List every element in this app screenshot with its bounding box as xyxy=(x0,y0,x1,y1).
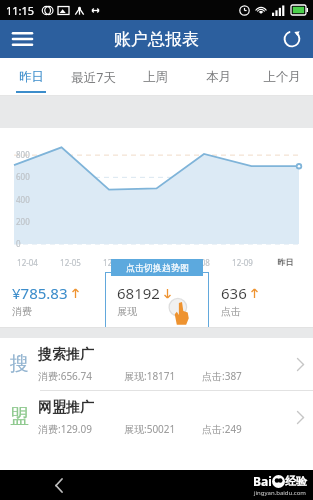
staticText: 68192 xyxy=(117,283,160,303)
staticText: 636 xyxy=(221,283,247,303)
staticText: 上个月 xyxy=(263,69,301,85)
button[interactable]: 上个月 xyxy=(250,58,313,96)
button[interactable]: 昨日 xyxy=(0,58,62,96)
staticText: 经验 xyxy=(285,474,307,488)
staticText: 最近7天 xyxy=(71,69,116,86)
staticText: 11:15 xyxy=(6,3,35,18)
staticText: 消费 xyxy=(12,305,32,318)
button[interactable]: 盟 xyxy=(0,391,313,443)
button[interactable]: 搜 xyxy=(0,338,313,390)
button[interactable]: Refresh xyxy=(271,20,313,58)
staticText: 600 xyxy=(16,171,30,182)
staticText: 账户总报表 xyxy=(114,29,199,50)
staticText: 上周 xyxy=(143,69,168,85)
staticText: 搜 xyxy=(10,352,29,376)
button[interactable]: 636 xyxy=(209,272,313,328)
staticText: 点击切换趋势图 xyxy=(126,262,189,273)
staticText: 12-05 xyxy=(49,257,92,268)
staticText: 12-08 xyxy=(178,257,221,268)
button[interactable]: ¥785.83 xyxy=(0,272,105,328)
staticText: 消费:129.09 xyxy=(38,422,124,436)
button[interactable]: 本月 xyxy=(187,58,250,96)
staticText: 搜索推广 xyxy=(38,346,94,364)
staticText: 800 xyxy=(16,149,30,160)
staticText: 12-07 xyxy=(135,257,178,268)
staticText: Bai xyxy=(253,473,272,489)
staticText: 点击:387 xyxy=(202,369,273,383)
staticText: 网盟推广 xyxy=(38,399,94,417)
button[interactable]: 上周 xyxy=(124,58,187,96)
staticText: 12-06 xyxy=(92,257,135,268)
staticText: 200 xyxy=(16,216,30,227)
staticText: 点击 xyxy=(221,305,241,318)
button[interactable]: 68192 xyxy=(105,272,209,328)
staticText: 0 xyxy=(16,238,21,249)
staticText: 400 xyxy=(16,194,30,205)
staticText: 12-09 xyxy=(221,257,264,268)
staticText: 展现:50021 xyxy=(124,422,202,436)
staticText: 本月 xyxy=(206,69,231,85)
staticText: 昨日 xyxy=(19,69,44,85)
button[interactable]: Back xyxy=(44,470,74,500)
staticText: ¥785.83 xyxy=(12,283,68,303)
staticText: 展现:18171 xyxy=(124,369,202,383)
staticText: jingyan.baidu.com xyxy=(254,489,306,497)
staticText: 12-04 xyxy=(6,257,49,268)
staticText: 昨日 xyxy=(264,257,307,267)
staticText: 消费:656.74 xyxy=(38,369,124,383)
staticText: 盟 xyxy=(10,405,29,429)
staticText: 点击:249 xyxy=(202,422,273,436)
button[interactable]: Menu xyxy=(0,20,44,58)
staticText: 展现 xyxy=(117,305,137,318)
button[interactable]: 最近7天 xyxy=(62,58,124,96)
